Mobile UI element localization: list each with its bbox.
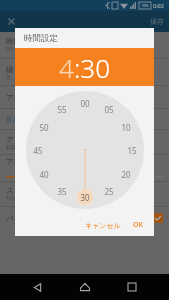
staticText: 35	[57, 186, 67, 197]
staticText: 4	[59, 50, 74, 85]
staticText: 20	[121, 169, 131, 180]
staticText: アラーム音	[6, 135, 45, 144]
staticText: 45	[33, 145, 43, 156]
button[interactable]: OK	[126, 216, 150, 234]
button[interactable]: アラーム	[0, 86, 169, 108]
staticText: 保存	[150, 17, 164, 26]
staticText: 40	[39, 169, 49, 180]
staticText: :30	[74, 50, 111, 85]
staticText: 繰り返し	[6, 65, 37, 74]
staticText: 0:02	[153, 2, 164, 9]
button[interactable]: キャンセル	[80, 217, 126, 234]
staticText: 10分	[6, 195, 17, 202]
button[interactable]: 繰り返し	[0, 59, 169, 85]
button[interactable]: Home	[75, 277, 95, 297]
button[interactable]: アラーム音	[0, 130, 169, 154]
staticText: アラーム	[6, 93, 37, 102]
staticText: 00:01	[6, 46, 19, 53]
staticText: 00	[80, 98, 90, 109]
button[interactable]: バイブレーション	[0, 207, 169, 229]
staticText: 30	[80, 192, 90, 203]
staticText: 初期設定の音	[6, 144, 37, 150]
staticText: 50	[39, 122, 49, 133]
staticText: アラーム音量	[6, 157, 52, 166]
button[interactable]: Close	[4, 14, 19, 29]
staticText: 25	[104, 186, 114, 197]
staticText: 音とバイブレーション	[6, 115, 68, 123]
staticText: 月、火、水、木、金	[6, 74, 51, 80]
button[interactable]: Recents	[122, 277, 142, 297]
button[interactable]: 保存	[145, 13, 169, 30]
staticText: 05	[104, 104, 114, 115]
staticText: 時間設定	[24, 33, 58, 44]
staticText: スヌーズ	[6, 186, 37, 195]
staticText: バイブレーション	[6, 214, 153, 223]
staticText: 55	[57, 104, 67, 115]
staticText: 時間	[6, 37, 21, 46]
staticText: 15	[127, 145, 137, 156]
staticText: 10	[121, 122, 131, 133]
button[interactable]: Back	[27, 277, 47, 297]
staticText: キャンセル	[85, 221, 121, 230]
button[interactable]: 時間	[0, 32, 169, 58]
staticText: OK	[133, 220, 143, 230]
button[interactable]: スヌーズ	[0, 182, 169, 206]
staticText: 70%	[142, 4, 149, 8]
